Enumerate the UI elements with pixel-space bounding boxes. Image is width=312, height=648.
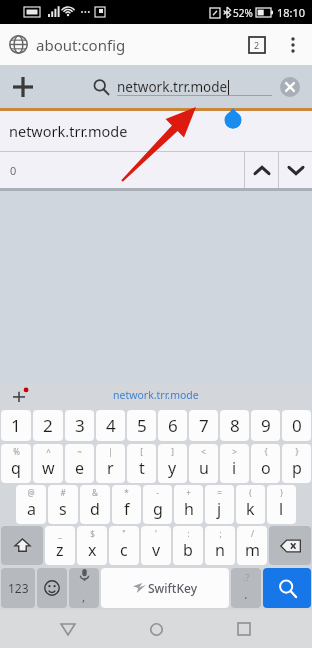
staticText: % — [13, 446, 20, 457]
button[interactable]: ( — [236, 485, 265, 524]
staticText: c — [120, 539, 128, 561]
button[interactable]: network.trr.mode — [113, 388, 199, 402]
staticText: * — [124, 487, 129, 498]
button[interactable]: + — [174, 485, 203, 524]
button[interactable]: Space — [101, 568, 229, 608]
button[interactable]: 8 — [220, 410, 249, 441]
button[interactable]: 1 — [1, 410, 31, 441]
button[interactable]: More options — [276, 28, 310, 62]
button[interactable]: 5 — [127, 410, 156, 441]
staticText: 7 — [199, 414, 209, 437]
button[interactable]: ; — [205, 526, 235, 565]
staticText: 2 — [43, 414, 53, 437]
button[interactable]: | — [96, 444, 125, 483]
staticText: / — [251, 528, 254, 539]
staticText: n — [215, 539, 225, 561]
button[interactable]: < — [189, 444, 218, 483]
button[interactable]: Emoji — [37, 568, 67, 608]
button[interactable]: Search — [263, 568, 311, 608]
staticText: o — [261, 457, 271, 479]
staticText: e — [75, 457, 85, 479]
button[interactable]: " — [109, 526, 139, 565]
button[interactable]: ~ — [65, 444, 94, 483]
staticText: 18:10 — [277, 5, 306, 20]
button[interactable]: 0 — [282, 410, 311, 441]
staticText: a — [27, 498, 36, 520]
button[interactable]: ' — [141, 526, 171, 565]
button[interactable]: ) — [267, 485, 296, 524]
staticText: # — [60, 487, 66, 498]
button[interactable]: 6 — [158, 410, 187, 441]
staticText: ) — [280, 487, 283, 498]
button[interactable]: - — [143, 485, 172, 524]
button[interactable]: Increase — [245, 152, 278, 188]
staticText: j — [217, 498, 222, 520]
staticText: p — [292, 457, 302, 479]
button[interactable]: Back — [40, 610, 96, 648]
button[interactable]: @ — [16, 485, 46, 524]
button[interactable]: * — [112, 485, 141, 524]
button[interactable]: / — [237, 526, 267, 565]
staticText: & — [92, 487, 98, 498]
staticText: . — [244, 585, 248, 603]
button[interactable]: 2 — [33, 410, 63, 441]
staticText: q — [11, 457, 21, 479]
staticText: w — [42, 457, 55, 479]
button[interactable]: 123 — [1, 568, 35, 608]
staticText: : — [187, 528, 190, 539]
button[interactable]: ] — [158, 444, 187, 483]
button[interactable]: Clear — [272, 69, 308, 105]
button[interactable]: 9 — [251, 410, 280, 441]
staticText: _ — [58, 528, 62, 539]
button[interactable]: _ — [45, 526, 75, 565]
button[interactable]: 4 — [96, 410, 125, 441]
button[interactable]: network.trr.mode — [0, 111, 312, 151]
staticText: " — [122, 528, 126, 539]
button[interactable]: Home — [128, 610, 184, 648]
staticText: t — [139, 457, 145, 479]
staticText: 4 — [106, 414, 116, 437]
staticText: = — [217, 487, 222, 498]
button[interactable]: > — [220, 444, 249, 483]
button[interactable]: ^ — [33, 444, 63, 483]
button[interactable]: Recents — [216, 610, 272, 648]
staticText: x — [88, 539, 97, 561]
button[interactable]: 7 — [189, 410, 218, 441]
button[interactable]: Add word — [9, 384, 31, 406]
button[interactable]: Shift — [1, 526, 43, 565]
staticText: 0 — [292, 414, 302, 437]
button[interactable]: Tabs — [238, 26, 276, 64]
button[interactable]: .? — [231, 568, 261, 608]
staticText: 9 — [261, 414, 271, 437]
staticText: g — [153, 498, 163, 520]
staticText: , — [82, 588, 86, 604]
button[interactable]: : — [173, 526, 203, 565]
staticText: $ — [90, 528, 95, 539]
staticText: 52% — [233, 6, 253, 20]
button[interactable]: Backspace — [269, 526, 311, 565]
button[interactable]: [ — [127, 444, 156, 483]
staticText: 123 — [8, 580, 29, 596]
button[interactable]: % — [1, 444, 31, 483]
staticText: - — [156, 487, 159, 498]
staticText: d — [90, 498, 100, 520]
button[interactable]: { — [251, 444, 280, 483]
staticText: h — [184, 498, 194, 520]
staticText: } — [295, 446, 299, 457]
button[interactable]: & — [80, 485, 110, 524]
staticText: network.trr.mode — [117, 78, 228, 96]
button[interactable]: Decrease — [279, 152, 312, 188]
staticText: ' — [155, 528, 157, 539]
button[interactable]: $ — [77, 526, 107, 565]
staticText: s — [59, 498, 67, 520]
button[interactable]: } — [282, 444, 311, 483]
button[interactable]: # — [48, 485, 78, 524]
staticText: 5 — [137, 414, 147, 437]
button[interactable]: Add — [0, 65, 46, 108]
button[interactable]: = — [205, 485, 234, 524]
button[interactable]: 3 — [65, 410, 94, 441]
staticText: network.trr.mode — [9, 121, 128, 141]
button[interactable]: Voice input — [69, 568, 99, 608]
staticText: ] — [171, 446, 174, 457]
staticText: ~ — [77, 446, 82, 457]
